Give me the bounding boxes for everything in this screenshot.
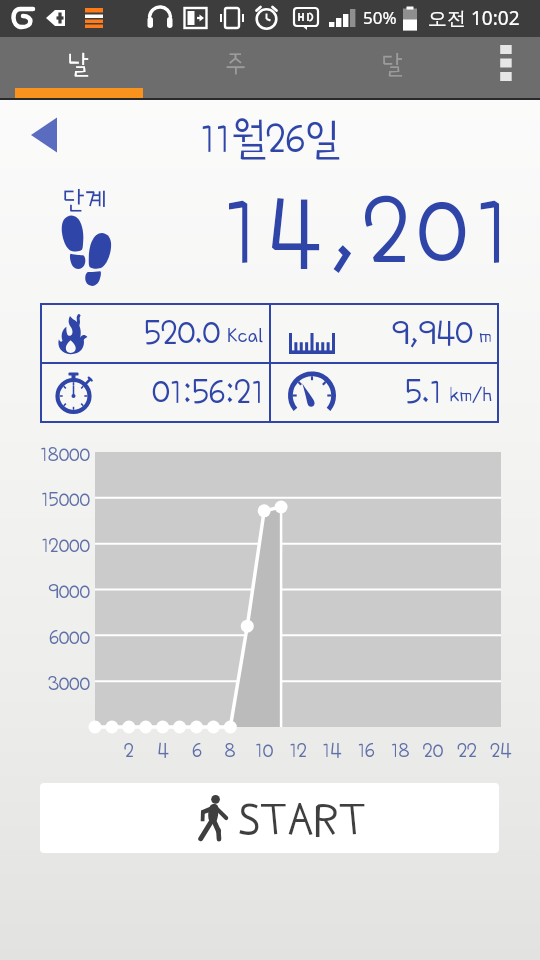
staticText: 12: [278, 739, 318, 761]
button[interactable]: 01:56:21: [42, 364, 269, 421]
staticText: 50%: [363, 6, 397, 29]
button[interactable]: More options: [471, 37, 540, 89]
button[interactable]: 520.0: [42, 305, 269, 362]
button[interactable]: Previous day: [18, 109, 70, 161]
staticText: 14,201: [0, 180, 518, 284]
button[interactable]: 달: [314, 37, 471, 88]
staticText: m: [479, 324, 492, 347]
staticText: START: [238, 794, 367, 844]
staticText: 10: [244, 739, 284, 761]
button[interactable]: 주: [157, 37, 314, 88]
button[interactable]: 날: [0, 37, 157, 88]
staticText: 주: [225, 51, 246, 77]
staticText: 14: [312, 739, 352, 761]
staticText: 9,940: [392, 314, 473, 351]
staticText: 11월26일: [0, 117, 540, 161]
staticText: 오전 10:02: [428, 5, 520, 31]
staticText: 3000: [0, 672, 90, 694]
staticText: 6: [177, 739, 217, 761]
staticText: 01:56:21: [152, 373, 264, 410]
staticText: 520.0: [144, 314, 221, 351]
staticText: 20: [413, 739, 453, 761]
staticText: 9000: [0, 580, 90, 602]
staticText: 18000: [0, 443, 90, 465]
staticText: 16: [346, 739, 386, 761]
staticText: 24: [481, 739, 521, 761]
staticText: 날: [68, 51, 89, 77]
staticText: 단계: [63, 186, 107, 213]
staticText: 12000: [0, 534, 90, 556]
button[interactable]: START: [40, 783, 499, 853]
staticText: 5.1: [405, 373, 443, 410]
staticText: 22: [447, 739, 487, 761]
staticText: 달: [382, 51, 403, 77]
staticText: 18: [380, 739, 420, 761]
staticText: km/h: [449, 383, 492, 406]
staticText: 6000: [0, 626, 90, 648]
staticText: 8: [210, 739, 250, 761]
staticText: Kcal: [227, 324, 264, 347]
staticText: 2: [109, 739, 149, 761]
button[interactable]: 9,940: [271, 305, 497, 362]
staticText: 15000: [0, 488, 90, 510]
staticText: 4: [143, 739, 183, 761]
button[interactable]: 5.1: [271, 364, 497, 421]
